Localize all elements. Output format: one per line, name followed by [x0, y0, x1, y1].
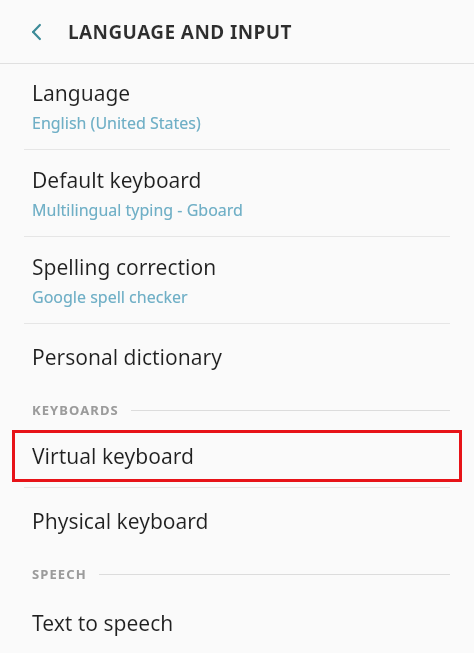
button[interactable]: Spelling correction [0, 237, 474, 323]
staticText: Personal dictionary [32, 343, 222, 372]
staticText: Physical keyboard [32, 507, 209, 536]
staticText: KEYBOARDS [32, 401, 119, 419]
button[interactable]: Text to speech [0, 594, 474, 653]
staticText: Language [32, 79, 131, 108]
staticText: Virtual keyboard [32, 442, 194, 471]
button[interactable]: Personal dictionary [0, 324, 474, 390]
staticText: Spelling correction [32, 253, 217, 282]
staticText: Multilingual typing - Gboard [32, 199, 243, 221]
button[interactable]: Back [14, 9, 60, 55]
staticText: LANGUAGE AND INPUT [68, 19, 292, 45]
button[interactable]: Language [0, 64, 474, 149]
button[interactable]: Virtual keyboard [12, 430, 462, 482]
staticText: Default keyboard [32, 166, 202, 195]
button[interactable]: Default keyboard [0, 150, 474, 236]
staticText: SPEECH [32, 565, 87, 583]
button[interactable]: Physical keyboard [0, 488, 474, 554]
staticText: English (United States) [32, 112, 201, 134]
staticText: Text to speech [32, 609, 174, 638]
staticText: Google spell checker [32, 286, 188, 308]
